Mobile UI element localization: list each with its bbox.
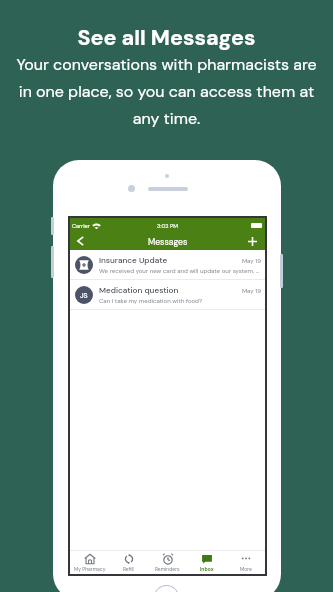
staticText: JS (80, 291, 88, 300)
button[interactable]: Back (72, 233, 88, 249)
staticText: May 19 (242, 257, 262, 265)
staticText: Can I take my medication with food? (99, 297, 203, 305)
staticText: We received your new card and will updat… (99, 267, 261, 275)
button[interactable]: My Pharmacy (70, 551, 109, 574)
staticText: Inbox (200, 566, 214, 573)
staticText: See all Messages (0, 24, 333, 52)
staticText: More (240, 566, 252, 573)
staticText: 3:02 PM (157, 222, 178, 229)
button[interactable]: More (226, 551, 265, 574)
button[interactable]: Reminders (148, 551, 187, 574)
staticText: Refill (123, 566, 134, 573)
staticText: Messages (148, 236, 188, 247)
button[interactable]: Inbox (187, 551, 226, 574)
staticText: Your conversations with pharmacists are … (9, 54, 324, 129)
staticText: My Pharmacy (74, 566, 106, 573)
button[interactable]: Insurance Update (70, 250, 265, 280)
button[interactable]: New message (245, 234, 259, 248)
staticText: Insurance Update (99, 255, 168, 266)
staticText: Carrier (72, 222, 90, 229)
staticText: Reminders (155, 566, 180, 573)
button[interactable]: JS (70, 280, 265, 310)
button[interactable]: Refill (109, 551, 148, 574)
staticText: Medication question (99, 285, 179, 296)
staticText: May 19 (242, 287, 262, 295)
